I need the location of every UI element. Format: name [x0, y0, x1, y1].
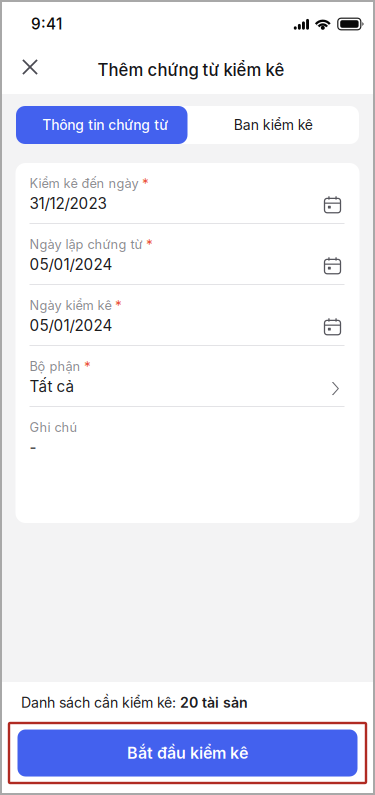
staticText: Ngày lập chứng từ [29, 237, 142, 252]
staticText: 20 tài sản [180, 694, 248, 711]
staticText: * [84, 358, 91, 374]
staticText: Ngày kiểm kê [29, 298, 111, 313]
staticText: Danh sách cần kiểm kê: [21, 694, 180, 711]
button[interactable]: Thông tin chứng từ [16, 106, 187, 144]
staticText: Ban kiểm kê [234, 116, 313, 133]
staticText: 05/01/2024 [29, 255, 112, 274]
staticText: Thêm chứng từ kiểm kê [97, 60, 284, 80]
button[interactable]: Kiểm kê đến ngày [15, 163, 359, 223]
staticText: Tất cả [29, 377, 74, 396]
staticText: 31/12/2023 [29, 194, 106, 213]
staticText: Thông tin chứng từ [42, 117, 168, 133]
button[interactable]: Close [2, 45, 52, 95]
staticText: Bắt đầu kiểm kê [127, 743, 248, 763]
button[interactable]: Ngày lập chứng từ [15, 224, 359, 284]
staticText: Bộ phận [29, 359, 80, 374]
staticText: * [142, 175, 149, 191]
button[interactable]: Bắt đầu kiểm kê [17, 729, 357, 776]
staticText: * [146, 236, 153, 252]
staticText: 05/01/2024 [29, 316, 112, 335]
button[interactable]: Ngày kiểm kê [15, 285, 359, 345]
staticText: Ghi chú [29, 420, 77, 435]
button[interactable]: Bộ phận [15, 346, 359, 406]
staticText: - [29, 438, 36, 456]
staticText: Kiểm kê đến ngày [29, 176, 138, 191]
button[interactable]: Ban kiểm kê [187, 106, 359, 144]
staticText: * [115, 297, 122, 313]
staticText: 9:41 [31, 15, 62, 33]
